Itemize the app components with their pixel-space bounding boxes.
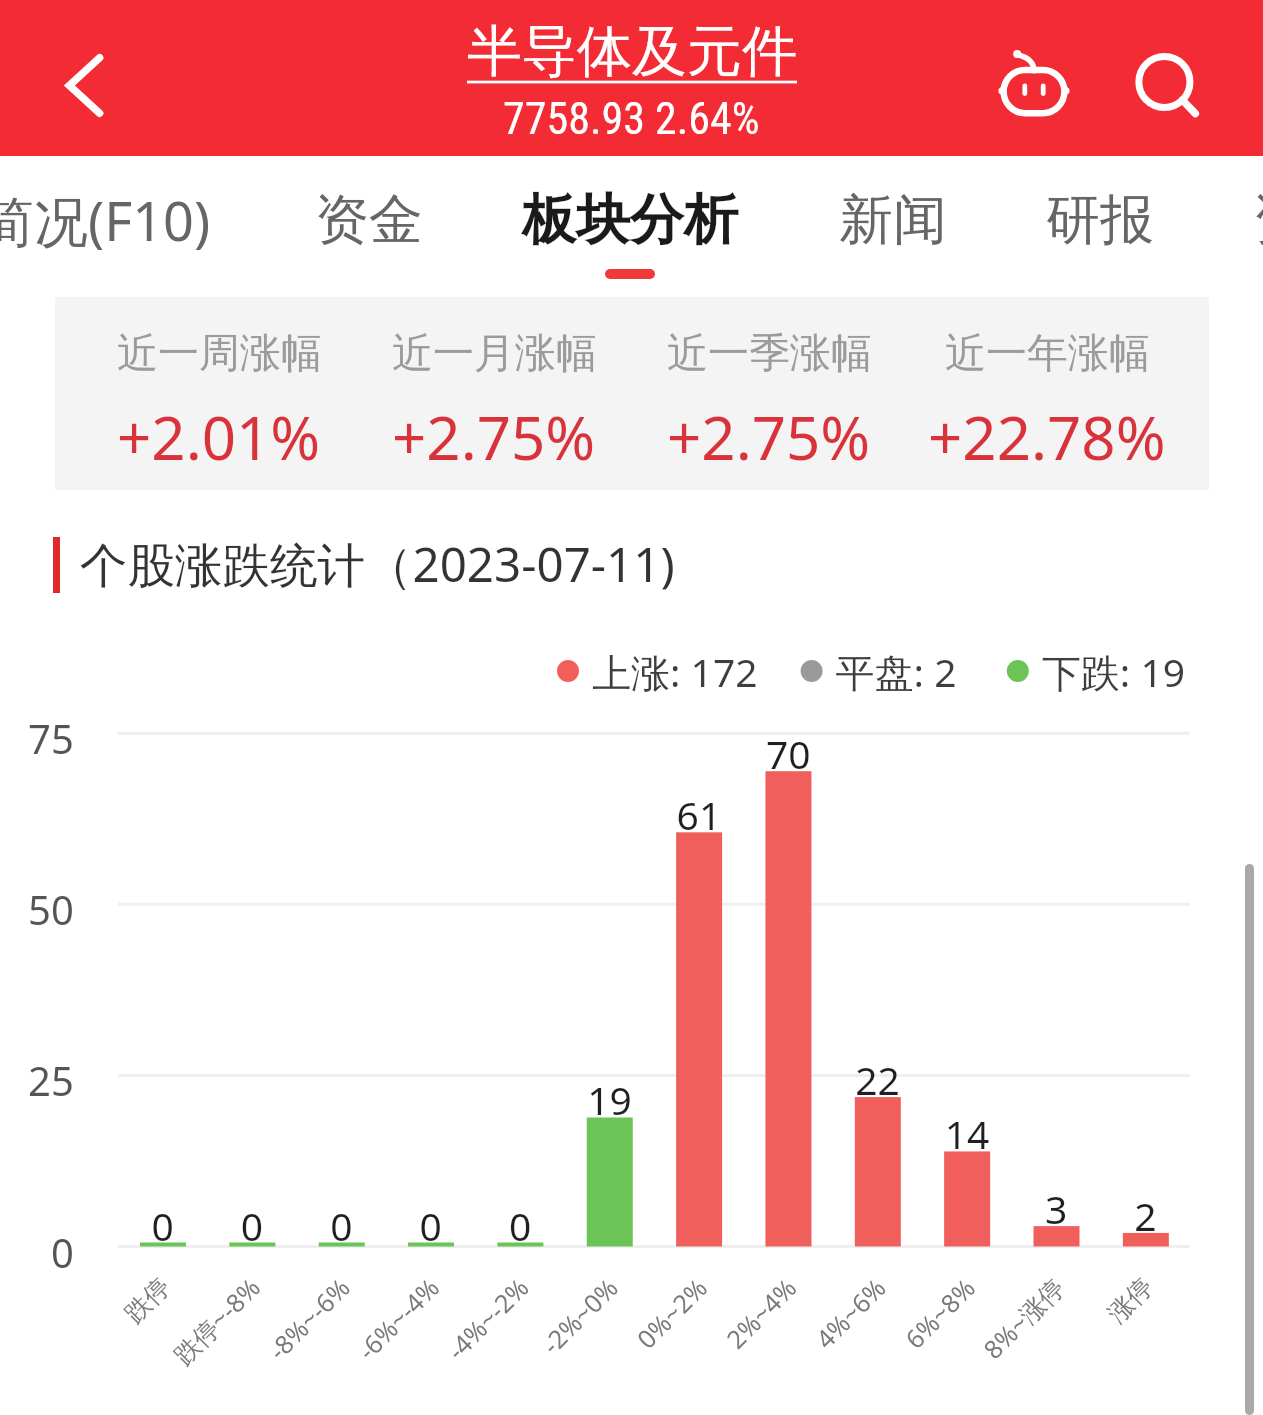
staticText: +2.75% <box>667 396 871 478</box>
button[interactable]: 新闻 <box>763 156 1023 296</box>
staticText: 简况(F10) <box>0 183 211 257</box>
staticText: 近一周涨幅 <box>117 328 322 380</box>
staticText: 资 <box>1253 186 1263 254</box>
staticText: 近一季涨幅 <box>667 328 872 380</box>
staticText: +2.01% <box>117 396 321 478</box>
button[interactable]: 研报 <box>970 156 1230 296</box>
staticText: 半导体及元件 <box>467 17 797 86</box>
staticText: 近一年涨幅 <box>945 328 1150 380</box>
staticText: 板块分析 <box>522 186 738 254</box>
button[interactable]: 资 <box>1150 156 1263 296</box>
button[interactable]: Back <box>44 45 124 125</box>
button[interactable]: 简况(F10) <box>0 156 225 296</box>
button[interactable]: 资金 <box>239 156 499 296</box>
staticText: +22.78% <box>928 396 1166 478</box>
staticText: 研报 <box>1046 186 1154 254</box>
staticText: 新闻 <box>839 186 947 254</box>
staticText: +2.75% <box>392 396 596 478</box>
staticText: 近一月涨幅 <box>392 328 597 380</box>
staticText: 资金 <box>315 186 423 254</box>
staticText: 7758.93 2.64% <box>503 93 760 145</box>
button[interactable]: Search <box>1128 47 1208 127</box>
staticText: 个股涨跌统计（2023-07-11) <box>80 531 675 596</box>
button[interactable]: 板块分析 <box>500 156 760 296</box>
button[interactable]: AI assistant <box>992 44 1076 128</box>
